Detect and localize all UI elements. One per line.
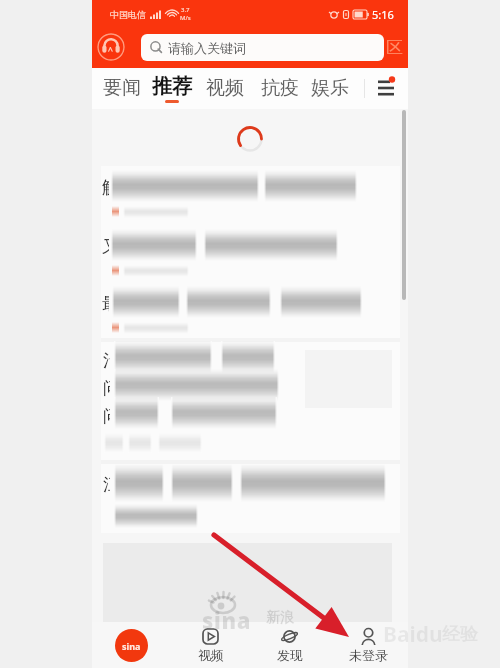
staticText: 又 <box>102 236 109 257</box>
staticText: 发现 <box>277 647 303 663</box>
staticText: 中国电信 <box>110 9 146 20</box>
staticText: 娱乐 <box>311 76 349 100</box>
button[interactable]: 视频 <box>171 622 250 668</box>
button[interactable]: 发现 <box>250 622 329 668</box>
staticText: 抗疫 <box>261 76 299 100</box>
staticText: M/s <box>180 14 191 22</box>
staticText: 最 <box>102 293 109 314</box>
button[interactable]: 推荐 <box>148 68 196 109</box>
staticText: 新浪 <box>266 609 294 627</box>
button[interactable]: Home <box>92 622 171 668</box>
button[interactable]: 抗疫 <box>257 68 303 109</box>
button[interactable]: 请输入关键词 <box>141 34 384 61</box>
staticText: 问 <box>103 406 110 427</box>
button[interactable]: 最 <box>101 286 400 341</box>
staticText: 视频 <box>198 647 224 663</box>
button[interactable]: All channels <box>372 74 400 102</box>
button[interactable]: 又 <box>101 229 400 284</box>
button[interactable]: Listen to news <box>97 33 125 61</box>
staticText: 治 <box>103 350 110 371</box>
staticText: 推荐 <box>152 74 192 99</box>
staticText: sina <box>202 605 251 635</box>
staticText: 解 <box>102 177 109 198</box>
staticText: 江 <box>103 474 110 495</box>
staticText: 5:16 <box>372 7 394 22</box>
button[interactable]: 娱乐 <box>307 68 353 109</box>
staticText: Baidu <box>383 620 443 649</box>
staticText: 经验 <box>442 623 478 646</box>
staticText: sina <box>122 640 141 652</box>
staticText: 请输入关键词 <box>168 40 246 56</box>
staticText: 未登录 <box>349 647 388 663</box>
staticText: 要闻 <box>103 76 141 100</box>
button[interactable]: 未登录 <box>329 622 408 668</box>
button[interactable]: 视频 <box>202 68 248 109</box>
staticText: 视频 <box>206 76 244 100</box>
button[interactable]: 要闻 <box>99 68 145 109</box>
staticText: 问 <box>103 378 110 399</box>
staticText: 区 <box>386 37 403 58</box>
staticText: 3.7 <box>181 6 190 14</box>
button[interactable]: 解 <box>101 170 400 225</box>
